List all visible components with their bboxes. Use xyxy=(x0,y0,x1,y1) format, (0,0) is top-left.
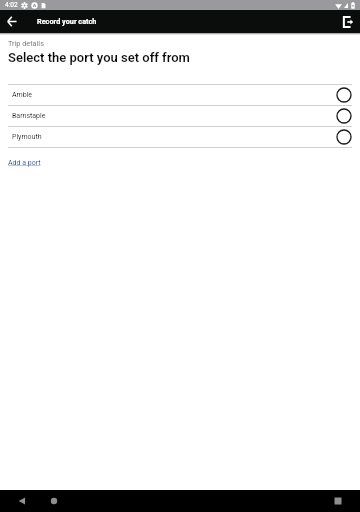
staticText: Add a port xyxy=(8,159,41,167)
button[interactable]: Back xyxy=(14,494,28,508)
staticText: Select the port you set off from xyxy=(8,50,190,65)
button[interactable]: Barnstaple xyxy=(0,106,360,126)
staticText: Record your catch xyxy=(37,17,97,26)
button[interactable]: Recent apps xyxy=(331,494,345,508)
button[interactable]: Navigate up xyxy=(7,16,17,27)
staticText: Trip details xyxy=(8,39,44,48)
staticText: Barnstaple xyxy=(12,112,46,120)
staticText: 4:02 xyxy=(5,1,18,9)
staticText: Amble xyxy=(12,91,33,99)
button[interactable]: Log out xyxy=(342,16,353,28)
button[interactable]: Add a port xyxy=(8,159,41,167)
staticText: Plymouth xyxy=(12,133,42,141)
button[interactable]: Plymouth xyxy=(0,127,360,147)
button[interactable]: Amble xyxy=(0,85,360,105)
button[interactable]: Home xyxy=(47,494,61,508)
